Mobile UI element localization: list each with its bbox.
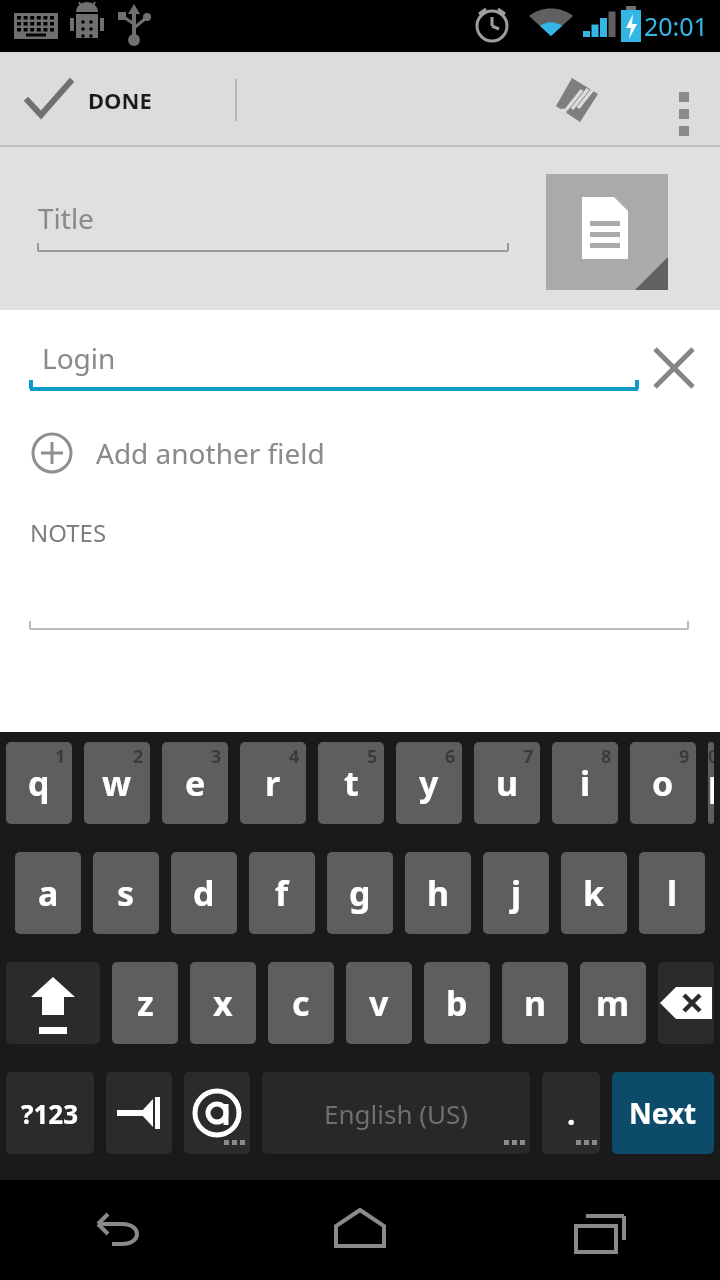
staticText: 3 — [211, 744, 222, 769]
staticText: e — [185, 760, 206, 806]
button[interactable]: k — [561, 852, 627, 934]
button[interactable]: h — [405, 852, 471, 934]
staticText: Next — [629, 1094, 697, 1132]
staticText: r — [265, 760, 281, 806]
button[interactable]: Clear — [638, 332, 710, 404]
staticText: g — [349, 870, 371, 916]
button[interactable]: p — [708, 742, 714, 824]
button[interactable]: b — [424, 962, 490, 1044]
staticText: l — [667, 870, 678, 916]
button[interactable]: q — [6, 742, 72, 824]
button[interactable]: DONE — [0, 52, 720, 147]
staticText: 1 — [55, 744, 66, 769]
button[interactable]: Home — [240, 1180, 480, 1280]
staticText: x — [213, 980, 233, 1026]
staticText: Add another field — [96, 434, 325, 472]
staticText: . — [567, 1093, 576, 1134]
button[interactable]: c — [268, 962, 334, 1044]
staticText: t — [344, 760, 359, 806]
staticText: w — [102, 760, 132, 806]
button[interactable]: Title — [38, 199, 508, 259]
button[interactable]: w — [84, 742, 150, 824]
staticText: q — [28, 760, 50, 806]
button[interactable]: Recent apps — [480, 1180, 720, 1280]
button[interactable]: . — [542, 1072, 600, 1154]
staticText: f — [275, 870, 289, 916]
staticText: p — [708, 760, 714, 806]
button[interactable]: d — [171, 852, 237, 934]
button[interactable]: m — [580, 962, 646, 1044]
staticText: 4 — [289, 744, 300, 769]
button[interactable]: Next — [612, 1072, 714, 1154]
staticText: h — [427, 870, 450, 916]
button[interactable]: Add another field — [0, 422, 720, 484]
button[interactable]: Shift — [6, 962, 100, 1044]
button[interactable]: At sign — [184, 1072, 250, 1154]
button[interactable]: g — [327, 852, 393, 934]
button[interactable]: Backspace — [658, 962, 714, 1044]
staticText: ?123 — [21, 1096, 79, 1131]
staticText: DONE — [88, 85, 152, 115]
button[interactable]: Back — [0, 1180, 240, 1280]
staticText: c — [292, 980, 310, 1026]
button[interactable]: z — [112, 962, 178, 1044]
staticText: d — [193, 870, 215, 916]
staticText: m — [596, 980, 630, 1026]
button[interactable]: u — [474, 742, 540, 824]
button[interactable]: r — [240, 742, 306, 824]
button[interactable]: o — [630, 742, 696, 824]
staticText: 6 — [445, 744, 456, 769]
button[interactable]: f — [249, 852, 315, 934]
staticText: s — [117, 870, 135, 916]
button[interactable]: s — [93, 852, 159, 934]
button[interactable]: Tag — [540, 64, 612, 136]
staticText: z — [137, 980, 154, 1026]
staticText: NOTES — [30, 516, 107, 549]
staticText: v — [369, 980, 389, 1026]
button[interactable]: i — [552, 742, 618, 824]
staticText: 20:01 — [644, 9, 708, 43]
staticText: 8 — [601, 744, 612, 769]
button[interactable]: v — [346, 962, 412, 1044]
button[interactable]: n — [502, 962, 568, 1044]
staticText: 5 — [367, 744, 378, 769]
button[interactable]: Login — [30, 339, 638, 397]
staticText: n — [524, 980, 547, 1026]
staticText: o — [652, 760, 674, 806]
button[interactable]: Document thumbnail — [546, 174, 668, 290]
staticText: y — [419, 760, 439, 806]
button[interactable]: y — [396, 742, 462, 824]
staticText: Title — [38, 199, 94, 237]
button[interactable]: l — [639, 852, 705, 934]
button[interactable]: a — [15, 852, 81, 934]
button[interactable]: x — [190, 962, 256, 1044]
button[interactable]: j — [483, 852, 549, 934]
button[interactable]: English (US) — [262, 1072, 530, 1154]
button[interactable]: t — [318, 742, 384, 824]
button[interactable]: ?123 — [6, 1072, 94, 1154]
button[interactable]: e — [162, 742, 228, 824]
staticText: English (US) — [324, 1096, 469, 1131]
staticText: k — [583, 870, 605, 916]
button[interactable] — [0, 607, 720, 641]
staticText: u — [496, 760, 519, 806]
staticText: 7 — [523, 744, 534, 769]
button[interactable]: Tab — [106, 1072, 172, 1154]
staticText: i — [580, 760, 591, 806]
staticText: a — [38, 870, 59, 916]
button[interactable]: More options — [648, 64, 720, 136]
staticText: 9 — [679, 744, 690, 769]
staticText: b — [446, 980, 468, 1026]
staticText: j — [511, 870, 522, 916]
staticText: Login — [42, 339, 116, 377]
staticText: 2 — [133, 744, 144, 769]
